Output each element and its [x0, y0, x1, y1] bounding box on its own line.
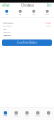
staticText: Me: [48, 115, 50, 117]
staticText: Order #20451: [3, 22, 14, 24]
staticText: Confirm Order: [17, 41, 37, 44]
staticText: Ships Mar 9: [3, 32, 11, 33]
button[interactable]: Confirm Order: [2, 39, 52, 46]
staticText: Pending: [45, 22, 51, 24]
button[interactable]: Cart: [0, 10, 13, 15]
staticText: Saved: [35, 115, 40, 117]
staticText: Checkout: [21, 4, 34, 7]
staticText: Edit: [46, 4, 51, 7]
staticText: Unpaid: [46, 25, 51, 27]
staticText: Cart: [5, 14, 8, 15]
staticText: Home: [3, 115, 7, 117]
staticText: Cart: [25, 115, 28, 117]
button[interactable]: Shop: [11, 111, 22, 117]
staticText: Shop: [14, 115, 18, 117]
staticText: Placed Mar 4: [3, 25, 12, 27]
button[interactable]: Saved: [32, 111, 43, 117]
staticText: Back: [4, 4, 9, 7]
staticText: Info: [19, 14, 21, 15]
staticText: 3 items: [3, 28, 7, 30]
button[interactable]: Home: [0, 111, 11, 117]
button[interactable]: Done: [40, 10, 54, 15]
staticText: Total $28.09: [3, 35, 11, 36]
button[interactable]: Edit: [45, 3, 52, 8]
staticText: Pay: [32, 14, 35, 15]
button[interactable]: Info: [13, 10, 27, 15]
button[interactable]: Me: [43, 111, 54, 117]
staticText: Done: [45, 14, 49, 15]
button[interactable]: Back: [1, 3, 10, 8]
button[interactable]: Cart: [22, 111, 32, 117]
button[interactable]: Pay: [27, 10, 40, 15]
